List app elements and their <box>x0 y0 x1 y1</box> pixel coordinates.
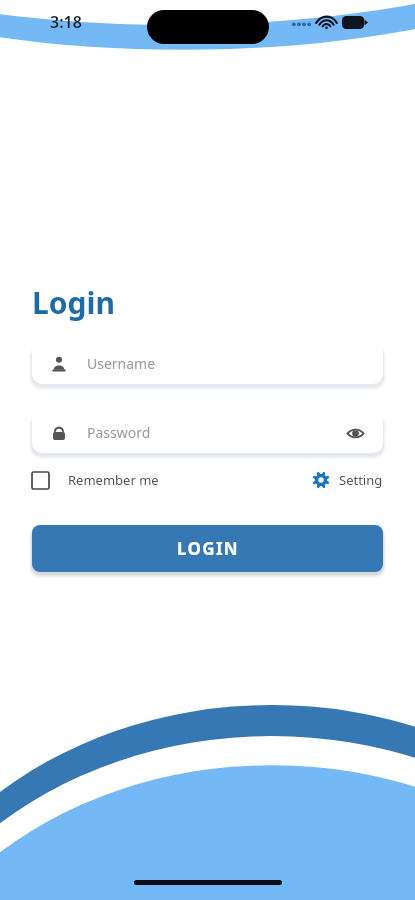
staticText: 3:18 <box>50 11 82 33</box>
staticText: Remember me <box>68 471 159 489</box>
button[interactable]: Password field <box>32 412 383 453</box>
staticText: Login <box>32 282 115 323</box>
button[interactable]: LOGIN <box>32 525 383 572</box>
staticText: LOGIN <box>177 537 239 560</box>
staticText: Username <box>87 354 156 373</box>
button[interactable]: Setting <box>312 471 383 489</box>
button[interactable]: Remember me <box>32 471 159 489</box>
button[interactable]: Username field <box>32 343 383 384</box>
staticText: Setting <box>339 471 383 489</box>
button[interactable]: Show password <box>340 418 370 448</box>
staticText: Password <box>87 423 151 442</box>
